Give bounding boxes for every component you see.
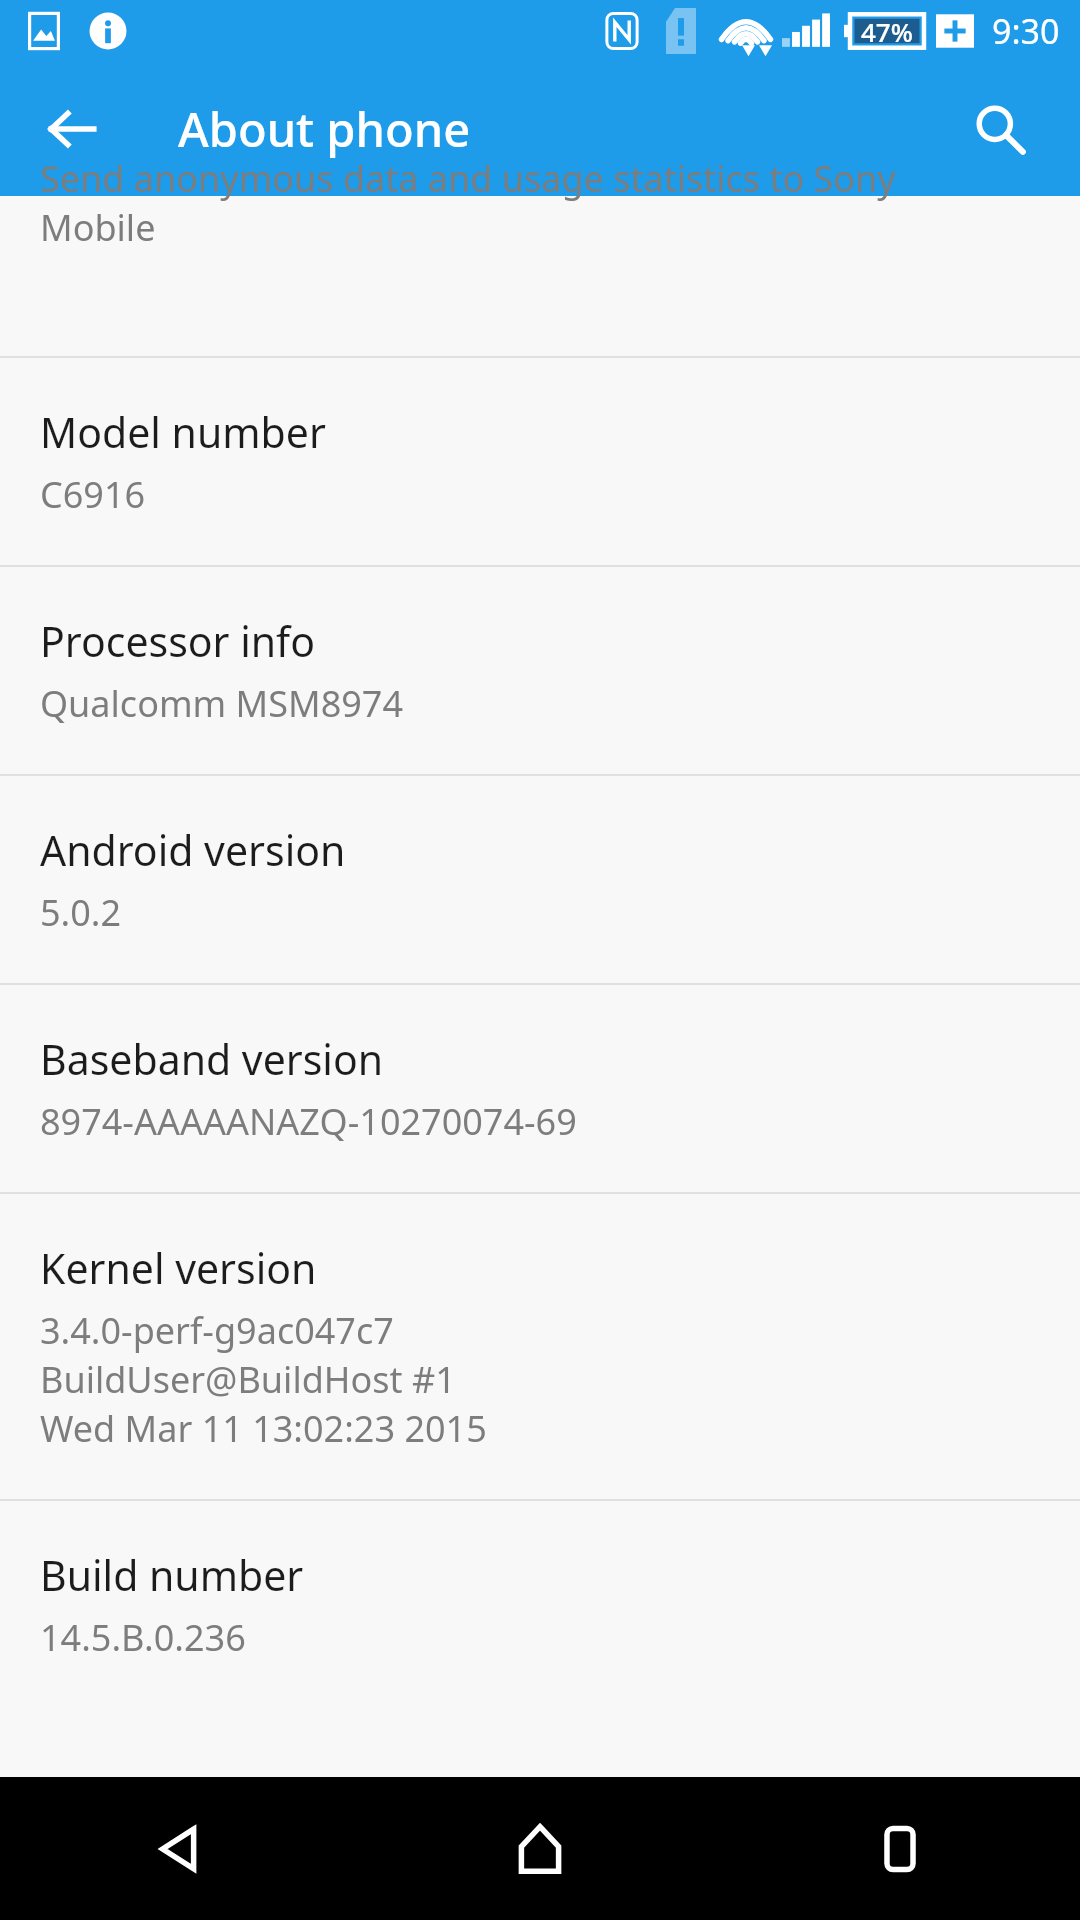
staticText: 47% [861,14,913,49]
button[interactable]: Send anonymous data and usage statistics… [0,196,1080,356]
button[interactable]: Home [360,1777,720,1920]
button[interactable]: Baseband version [0,985,1080,1192]
button[interactable]: Build number [0,1501,1080,1708]
staticText: Baseband version [40,1031,384,1087]
staticText: Processor info [40,613,316,669]
staticText: Android version [40,822,346,878]
staticText: About phone [178,97,471,161]
staticText: 9:30 [992,8,1060,54]
staticText: 8974-AAAAANAZQ-10270074-69 [40,1097,577,1146]
staticText: 14.5.B.0.236 [40,1613,246,1662]
button[interactable]: Back [18,75,126,183]
button[interactable]: Model number [0,358,1080,565]
button[interactable]: Back [0,1777,360,1920]
staticText: BuildUser@BuildHost #1 [40,1355,456,1404]
staticText: Qualcomm MSM8974 [40,679,404,728]
staticText: Wed Mar 11 13:02:23 2015 [40,1404,487,1453]
button[interactable]: Android version [0,776,1080,983]
button[interactable]: Recent apps [720,1777,1080,1920]
staticText: 3.4.0-perf-g9ac047c7 [40,1306,394,1355]
staticText: 5.0.2 [40,888,122,937]
button[interactable]: Kernel version [0,1194,1080,1499]
staticText: C6916 [40,470,146,519]
staticText: Mobile [40,203,156,252]
button[interactable]: Search [946,75,1054,183]
button[interactable]: Processor info [0,567,1080,774]
staticText: Build number [40,1547,304,1603]
staticText: Send anonymous data and usage statistics… [40,154,896,203]
staticText: Kernel version [40,1240,317,1296]
staticText: Model number [40,404,326,460]
